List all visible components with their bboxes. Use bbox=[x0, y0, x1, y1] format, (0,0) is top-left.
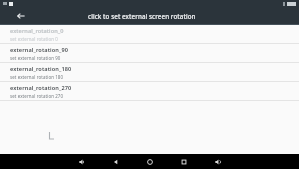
button[interactable]: Volume up bbox=[210, 154, 226, 169]
staticText: set external rotation 180 bbox=[10, 74, 64, 80]
staticText: click to set external screen rotation bbox=[88, 12, 196, 20]
button[interactable]: Back bbox=[108, 154, 124, 169]
staticText: external_rotation_180 bbox=[10, 65, 72, 73]
button[interactable]: external_rotation_270 bbox=[0, 82, 299, 100]
button[interactable]: Volume down bbox=[74, 154, 90, 169]
staticText: set external rotation 90 bbox=[10, 55, 61, 61]
staticText: set external rotation 270 bbox=[10, 93, 64, 99]
button[interactable]: Back bbox=[14, 9, 28, 23]
button[interactable]: external_rotation_180 bbox=[0, 63, 299, 81]
staticText: external_rotation_270 bbox=[10, 84, 72, 92]
staticText: external_rotation_90 bbox=[10, 46, 69, 54]
button[interactable]: external_rotation_90 bbox=[0, 44, 299, 62]
button[interactable]: Recents bbox=[176, 154, 192, 169]
staticText: set external rotation 0 bbox=[10, 36, 58, 42]
button[interactable]: Home bbox=[142, 154, 158, 169]
staticText: external_rotation_0 bbox=[10, 27, 64, 35]
button[interactable]: external_rotation_0 bbox=[0, 25, 299, 43]
